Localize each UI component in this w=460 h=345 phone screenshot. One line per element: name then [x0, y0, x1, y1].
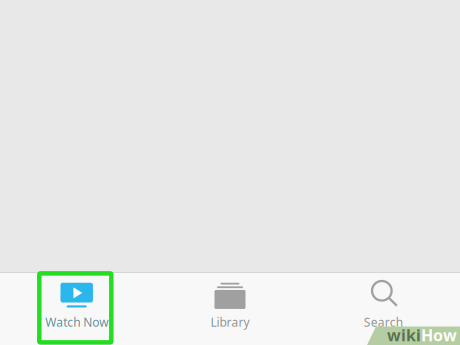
button[interactable]: Library	[153, 273, 307, 345]
staticText: Watch Now	[45, 314, 108, 330]
staticText: Library	[210, 314, 249, 330]
staticText: How	[421, 324, 457, 345]
button[interactable]: Search	[307, 273, 460, 345]
button[interactable]: Watch Now	[0, 273, 153, 345]
staticText: Search	[364, 314, 403, 330]
staticText: wiki	[387, 324, 421, 345]
